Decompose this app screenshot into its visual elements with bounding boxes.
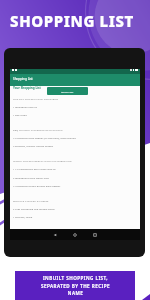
button[interactable]: 4 boneless, skinless chicken breasts xyxy=(13,144,143,147)
staticText: Your Shopping List xyxy=(13,86,41,90)
button[interactable]: 1 leek sliced xyxy=(13,113,143,116)
staticText: SHOPPING LIST xyxy=(0,11,147,31)
staticText: MUTE LIST xyxy=(61,90,74,93)
button[interactable]: INBUILT SHOPPING LIST, SEPARATED BY THE … xyxy=(15,271,135,300)
button[interactable]: 1/4 teaspoon freshly ground black pepper xyxy=(13,184,143,187)
button[interactable]: Back xyxy=(52,232,58,238)
button[interactable]: Recents xyxy=(92,232,98,238)
button[interactable]: 1 tablespoon olive oil xyxy=(13,105,143,108)
staticText: ONE POT CHICKEN SOUP FOR BABIES xyxy=(13,97,59,100)
staticText: BBQ CHICKEN CASSEROLE WITH ONIONS xyxy=(13,128,63,131)
button[interactable]: 2 cups shortening and sesame seeds xyxy=(13,207,143,210)
button[interactable]: 1 avocado, sliced xyxy=(13,215,143,218)
button[interactable]: 2 tablespoons fresh lemon juice xyxy=(13,176,143,179)
button[interactable]: MUTE LIST xyxy=(47,87,88,95)
staticText: REGULAR CHICKEN & CHEESE xyxy=(13,199,49,202)
button[interactable]: Shopping List xyxy=(10,74,140,86)
button[interactable]: 1 1/2 tablespoons extra virgin olive oil xyxy=(13,167,143,170)
staticText: LEMON CHICKEN BREAST WITH CUCUMBER STIR xyxy=(13,159,72,162)
staticText: Shopping List xyxy=(13,77,33,81)
staticText: INBUILT SHOPPING LIST, SEPARATED BY THE … xyxy=(41,275,110,296)
button[interactable]: Home xyxy=(72,232,78,238)
button[interactable]: 1/2 teaspoon black pepper (or add more),… xyxy=(13,136,143,139)
